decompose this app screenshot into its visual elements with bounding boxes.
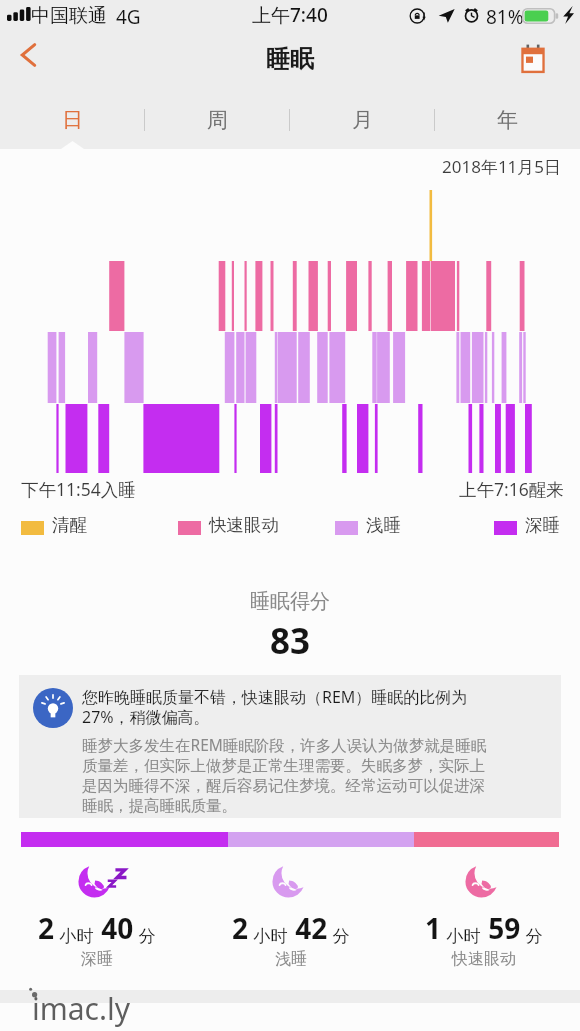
staticText: 浅睡 (366, 514, 401, 536)
staticText: 睡眠 (266, 44, 314, 74)
staticText: 分 (328, 924, 350, 947)
staticText: 快速眼动 (452, 949, 516, 969)
staticText: 1 (425, 909, 442, 947)
staticText: 83 (270, 617, 311, 665)
staticText: 小时 (442, 924, 481, 947)
staticText: 年 (497, 107, 518, 133)
staticText: 深睡 (525, 514, 560, 536)
staticText: 清醒 (52, 514, 87, 536)
button[interactable]: 2 (194, 857, 387, 969)
staticText: 分 (134, 924, 156, 947)
button[interactable]: 年 (435, 87, 580, 149)
staticText: 深睡 (81, 949, 113, 969)
staticText: 日 (62, 107, 83, 133)
staticText: 快速眼动 (209, 514, 279, 536)
staticText: 小时 (55, 924, 94, 947)
staticText: 小时 (249, 924, 288, 947)
button[interactable]: 2 (0, 857, 194, 969)
staticText: 睡梦大多发生在REM睡眠阶段，许多人误认为做梦就是睡眠 质量差，但实际上做梦是正… (82, 734, 487, 815)
staticText: 睡眠得分 (250, 589, 330, 614)
button[interactable]: 深睡 (494, 514, 560, 536)
staticText: 2018年11月5日 (442, 155, 562, 178)
button[interactable]: 日 (0, 87, 145, 149)
button[interactable]: 月 (290, 87, 435, 149)
staticText: 上午7:40 (252, 2, 328, 28)
staticText: 42 (288, 909, 328, 947)
staticText: 59 (481, 909, 521, 947)
button[interactable]: 1 (387, 857, 580, 969)
staticText: 周 (207, 107, 228, 133)
button[interactable]: 浅睡 (335, 514, 401, 536)
staticText: 月 (352, 107, 373, 133)
button[interactable]: 周 (145, 87, 290, 149)
button[interactable]: 日历 (510, 30, 555, 87)
staticText: 中国联通 (31, 4, 107, 28)
staticText: 下午11:54入睡 (21, 477, 136, 501)
button[interactable]: 返回 (5, 30, 51, 87)
staticText: 浅睡 (275, 949, 307, 969)
staticText: 上午7:16醒来 (459, 477, 564, 501)
button[interactable]: 快速眼动 (178, 514, 279, 536)
staticText: 81% (486, 4, 524, 30)
staticText: 4G (116, 4, 141, 30)
button[interactable]: 清醒 (21, 514, 87, 536)
staticText: imac.ly (32, 988, 131, 1029)
staticText: 2 (38, 909, 55, 947)
staticText: 2 (232, 909, 249, 947)
staticText: 分 (521, 924, 543, 947)
staticText: 您昨晚睡眠质量不错，快速眼动（REM）睡眠的比例为 27%，稍微偏高。 (82, 686, 468, 728)
staticText: 40 (94, 909, 134, 947)
